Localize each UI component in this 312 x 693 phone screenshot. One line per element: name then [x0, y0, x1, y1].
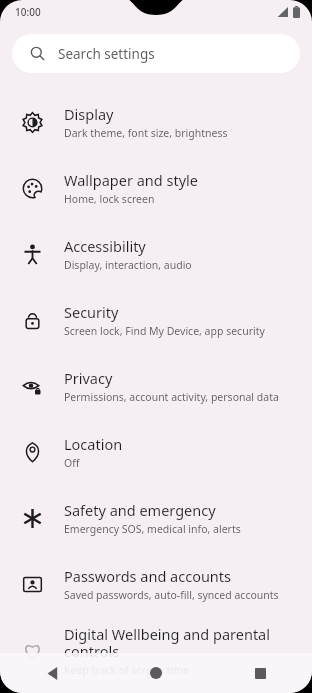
button[interactable]: Home — [104, 653, 208, 693]
staticText: Keep track of screen time — [64, 663, 189, 677]
button[interactable]: Accessibility — [0, 221, 312, 287]
staticText: Display — [64, 104, 114, 124]
staticText: Screen lock, Find My Device, app securit… — [64, 324, 265, 338]
staticText: Safety and emergency — [64, 500, 216, 520]
button[interactable]: Search settings — [12, 34, 300, 73]
button[interactable]: Wallpaper and style — [0, 155, 312, 221]
button[interactable]: Security — [0, 287, 312, 353]
button[interactable]: Location — [0, 419, 312, 485]
staticText: Home, lock screen — [64, 192, 155, 206]
staticText: Security — [64, 302, 119, 322]
button[interactable]: Passwords and accounts — [0, 551, 312, 617]
staticText: Saved passwords, auto-fill, synced accou… — [64, 588, 279, 602]
button[interactable]: Privacy — [0, 353, 312, 419]
button[interactable]: Digital Wellbeing and parental controls — [0, 617, 312, 683]
staticText: Passwords and accounts — [64, 566, 232, 586]
button[interactable]: Display — [0, 89, 312, 155]
button[interactable]: Back — [0, 653, 104, 693]
staticText: Privacy — [64, 368, 113, 388]
staticText: 10:00 — [15, 5, 41, 19]
staticText: Search settings — [58, 45, 155, 63]
staticText: Accessibility — [64, 236, 146, 256]
button[interactable]: Safety and emergency — [0, 485, 312, 551]
staticText: Emergency SOS, medical info, alerts — [64, 522, 241, 536]
staticText: Permissions, account activity, personal … — [64, 390, 279, 404]
staticText: Dark theme, font size, brightness — [64, 126, 228, 140]
staticText: Location — [64, 434, 123, 454]
button[interactable]: Recent apps — [208, 653, 312, 693]
staticText: Off — [64, 456, 80, 470]
staticText: Digital Wellbeing and parental controls — [64, 624, 296, 661]
staticText: Wallpaper and style — [64, 170, 198, 190]
staticText: Display, interaction, audio — [64, 258, 192, 272]
